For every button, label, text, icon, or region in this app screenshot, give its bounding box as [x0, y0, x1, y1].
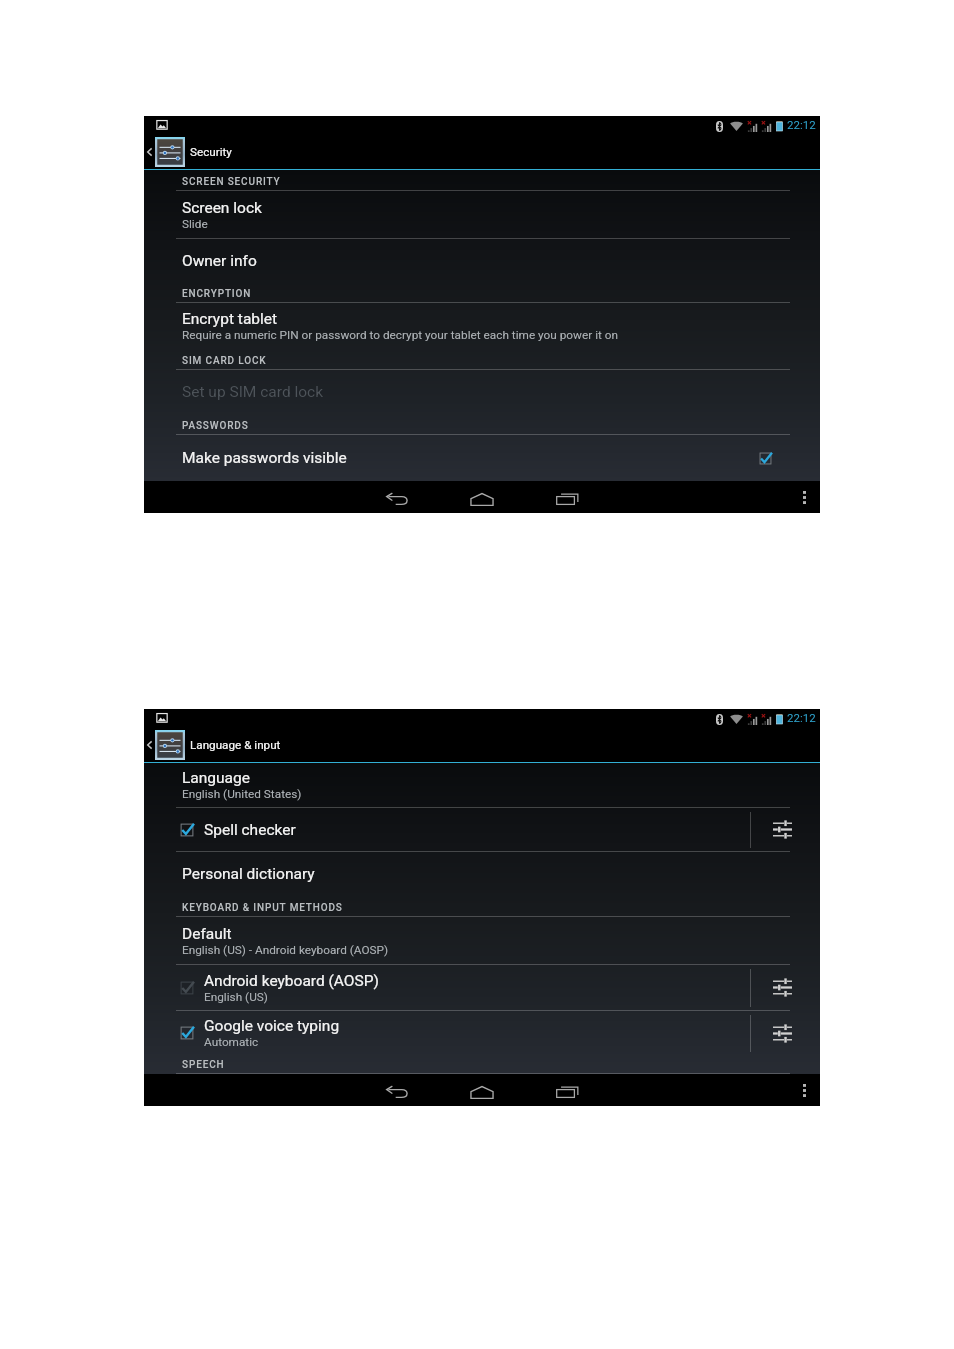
- staticText: ENCRYPTION: [182, 288, 252, 300]
- staticText: Personal dictionary: [182, 865, 315, 883]
- button[interactable]: Toggle: [144, 1011, 820, 1055]
- button[interactable]: Settings: [751, 1011, 820, 1055]
- button[interactable]: Owner info: [144, 239, 820, 282]
- staticText: Default: [182, 925, 232, 943]
- button[interactable]: Toggle: [177, 1023, 197, 1043]
- staticText: Automatic: [204, 1035, 259, 1049]
- staticText: Slide: [182, 217, 208, 231]
- staticText: Encrypt tablet: [182, 310, 278, 328]
- staticText: SIM CARD LOCK: [182, 355, 267, 367]
- button[interactable]: Toggle: [177, 978, 197, 998]
- button[interactable]: Default: [144, 917, 820, 964]
- button[interactable]: Language: [144, 763, 820, 807]
- staticText: KEYBOARD & INPUT METHODS: [182, 902, 343, 914]
- staticText: Make passwords visible: [182, 449, 347, 467]
- staticText: Set up SIM card lock: [182, 383, 324, 401]
- button[interactable]: Personal dictionary: [144, 852, 820, 896]
- button[interactable]: Encrypt tablet: [144, 303, 820, 349]
- button[interactable]: Back: [366, 481, 428, 513]
- button[interactable]: Recent apps: [536, 1074, 598, 1106]
- button[interactable]: Back: [366, 1074, 428, 1106]
- staticText: English (US): [204, 990, 268, 1004]
- staticText: PASSWORDS: [182, 420, 249, 432]
- button[interactable]: More options: [788, 1074, 820, 1106]
- staticText: Language: [182, 769, 250, 787]
- button[interactable]: More options: [788, 481, 820, 513]
- staticText: English (United States): [182, 787, 302, 801]
- button[interactable]: Home: [451, 1074, 513, 1106]
- staticText: Security: [190, 145, 232, 159]
- staticText: SPEECH: [182, 1059, 225, 1071]
- staticText: Require a numeric PIN or password to dec…: [182, 328, 619, 342]
- staticText: 22:12: [787, 711, 816, 724]
- button[interactable]: Toggle: [177, 820, 197, 840]
- staticText: Screen lock: [182, 199, 262, 217]
- staticText: Language & input: [190, 738, 281, 752]
- button[interactable]: Recent apps: [536, 481, 598, 513]
- button[interactable]: Make passwords visible: [144, 435, 820, 481]
- staticText: Owner info: [182, 252, 257, 270]
- button[interactable]: Navigate up: [144, 727, 291, 763]
- staticText: Android keyboard (AOSP): [204, 972, 379, 990]
- staticText: 22:12: [787, 118, 816, 131]
- staticText: Spell checker: [204, 821, 296, 839]
- button[interactable]: Navigate up: [144, 134, 242, 170]
- button[interactable]: Toggle: [144, 808, 820, 851]
- button[interactable]: Toggle: [755, 448, 775, 468]
- button[interactable]: Screen lock: [144, 191, 820, 238]
- button[interactable]: Set up SIM card lock: [144, 370, 820, 414]
- button[interactable]: Toggle: [144, 965, 820, 1010]
- staticText: SCREEN SECURITY: [182, 176, 281, 188]
- staticText: English (US) - Android keyboard (AOSP): [182, 943, 389, 957]
- button[interactable]: Settings: [751, 808, 820, 851]
- staticText: Google voice typing: [204, 1017, 340, 1035]
- button[interactable]: Home: [451, 481, 513, 513]
- button[interactable]: Settings: [751, 965, 820, 1010]
